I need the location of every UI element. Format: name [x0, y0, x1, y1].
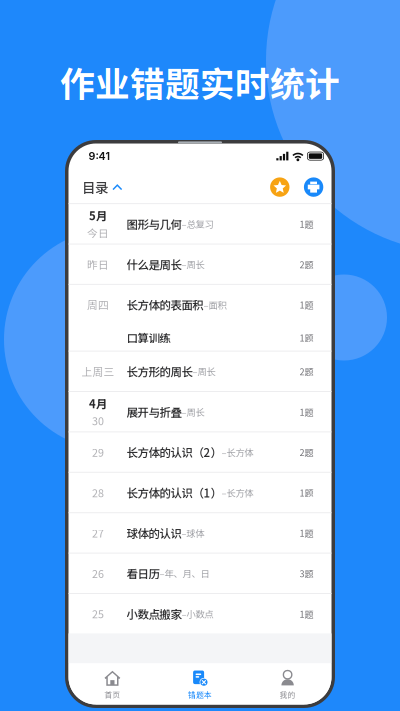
staticText: 4月: [89, 395, 107, 411]
staticText: 1题: [299, 486, 313, 499]
staticText: 我的: [280, 689, 296, 700]
staticText: 长方形的周长: [126, 363, 192, 380]
button[interactable]: 4月: [68, 392, 331, 432]
staticText: 25: [92, 606, 104, 621]
staticText: 1题: [299, 607, 313, 620]
button[interactable]: 打印: [304, 177, 323, 197]
button[interactable]: 我的: [244, 663, 331, 707]
staticText: 2题: [299, 445, 313, 459]
staticText: 上周三: [81, 364, 114, 379]
button[interactable]: 27: [68, 513, 331, 554]
staticText: 2题: [299, 258, 313, 271]
staticText: 1题: [299, 217, 313, 230]
staticText: 展开与折叠: [126, 403, 181, 420]
button[interactable]: 5月: [68, 204, 331, 244]
staticText: 作业错题实时统计: [60, 57, 340, 107]
staticText: 口算训练: [126, 329, 170, 346]
button[interactable]: 收藏: [270, 177, 289, 197]
staticText: 目录: [82, 177, 108, 197]
staticText: 首页: [104, 689, 120, 700]
staticText: –周长: [181, 257, 204, 271]
staticText: 长方体的认识（1）: [126, 484, 221, 501]
staticText: –总复习: [181, 217, 213, 230]
button[interactable]: 上周三: [68, 352, 331, 392]
staticText: 1题: [299, 405, 313, 418]
staticText: 30: [92, 413, 104, 428]
staticText: 9:41: [88, 150, 110, 162]
staticText: –年、月、日: [159, 566, 209, 580]
staticText: 长方体的表面积: [126, 296, 203, 313]
button[interactable]: 28: [68, 473, 331, 513]
button[interactable]: 错题本: [156, 663, 244, 707]
staticText: 小数点搬家: [126, 605, 181, 622]
staticText: 球体的认识: [126, 525, 181, 541]
button[interactable]: 首页: [69, 663, 156, 707]
staticText: –球体: [181, 526, 204, 540]
staticText: 昨日: [87, 256, 109, 272]
staticText: 长方体的认识（2）: [126, 444, 221, 460]
staticText: 看日历: [126, 565, 159, 582]
button[interactable]: 25: [68, 594, 331, 633]
staticText: 1题: [299, 298, 313, 311]
staticText: –周长: [181, 405, 204, 418]
button[interactable]: 26: [68, 554, 331, 594]
staticText: 5月: [89, 207, 107, 223]
staticText: 27: [92, 525, 104, 541]
staticText: 28: [92, 485, 104, 500]
staticText: 2题: [299, 365, 313, 378]
staticText: –周长: [192, 364, 215, 378]
button[interactable]: 口算训练: [68, 324, 331, 352]
staticText: 图形与几何: [126, 215, 181, 232]
button[interactable]: 目录: [82, 171, 122, 203]
staticText: –长方体: [221, 445, 253, 459]
button[interactable]: 周四: [68, 285, 331, 324]
staticText: 今日: [87, 225, 109, 240]
button[interactable]: 29: [68, 432, 331, 473]
staticText: 3题: [299, 567, 313, 580]
staticText: 1题: [299, 526, 313, 539]
staticText: 26: [92, 566, 104, 581]
staticText: 29: [92, 444, 104, 460]
staticText: 周四: [87, 297, 109, 312]
staticText: –小数点: [181, 607, 213, 620]
staticText: –面积: [203, 298, 226, 311]
staticText: 1题: [299, 331, 313, 344]
button[interactable]: 昨日: [68, 244, 331, 285]
staticText: 什么是周长: [126, 256, 181, 272]
staticText: –长方体: [221, 486, 253, 499]
staticText: 错题本: [188, 689, 212, 700]
